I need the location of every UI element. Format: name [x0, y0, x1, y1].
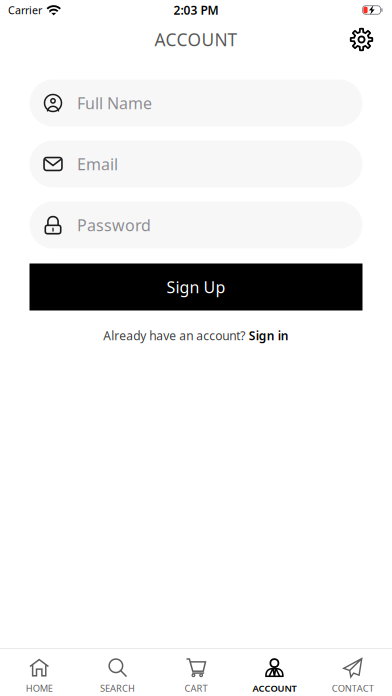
button[interactable]: ACCOUNT — [235, 649, 314, 696]
button[interactable]: Full Name — [29, 79, 362, 126]
button[interactable]: SEARCH — [78, 649, 157, 696]
button[interactable]: CONTACT — [314, 649, 392, 696]
staticText: 2:03 PM — [173, 2, 218, 18]
staticText: Sign Up — [166, 276, 225, 298]
button[interactable]: Sign Up — [29, 263, 362, 310]
button[interactable]: HOME — [0, 649, 78, 696]
staticText: Carrier — [8, 3, 42, 17]
staticText: Full Name — [77, 92, 152, 114]
staticText: Sign in — [249, 327, 289, 343]
staticText: Already have an account? — [103, 327, 245, 343]
staticText: CONTACT — [332, 682, 374, 694]
staticText: Password — [77, 214, 151, 236]
staticText: CART — [184, 682, 207, 694]
staticText: SEARCH — [100, 682, 135, 694]
staticText: HOME — [26, 682, 53, 694]
button[interactable]: Password — [29, 201, 362, 248]
staticText: Email — [77, 153, 118, 175]
staticText: ACCOUNT — [154, 28, 237, 51]
button[interactable]: CART — [157, 649, 235, 696]
staticText: ACCOUNT — [252, 682, 296, 694]
button[interactable]: Settings — [350, 28, 392, 51]
button[interactable]: Already have an account? — [29, 326, 362, 344]
button[interactable]: Email — [29, 140, 362, 187]
